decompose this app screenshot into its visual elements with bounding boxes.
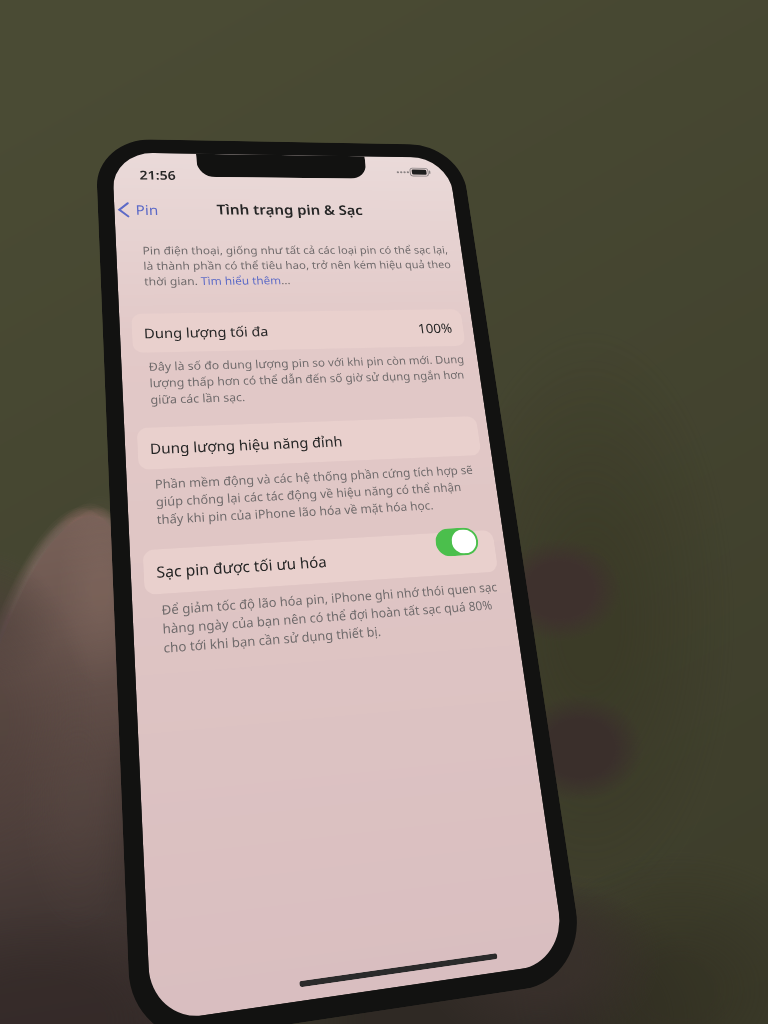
staticText: 21:56 bbox=[139, 166, 177, 183]
staticText: Để giảm tốc độ lão hóa pin, iPhone ghi n… bbox=[161, 578, 512, 657]
staticText: Đây là số đo dung lượng pin so với khi p… bbox=[148, 352, 478, 408]
staticText: Pin bbox=[135, 201, 159, 219]
button[interactable]: Dung lượng hiệu năng đỉnh bbox=[137, 416, 482, 470]
staticText: Sạc pin được tối ưu hóa bbox=[156, 551, 328, 582]
button[interactable]: Pin bbox=[114, 197, 163, 222]
button[interactable]: Sạc pin được tối ưu hóa bbox=[142, 530, 498, 595]
staticText: 100% bbox=[417, 319, 454, 337]
staticText: Tình trạng pin & Sạc bbox=[216, 200, 364, 218]
staticText: Phần mềm động và các hệ thống phần cứng … bbox=[154, 461, 494, 528]
staticText: Pin điện thoại, giống như tất cả các loạ… bbox=[142, 243, 461, 289]
button[interactable]: Optimized Battery Charging, on bbox=[434, 527, 480, 557]
button[interactable]: Dung lượng tối đa bbox=[131, 309, 466, 353]
staticText: Dung lượng tối đa bbox=[143, 322, 270, 342]
staticText: Dung lượng hiệu năng đỉnh bbox=[149, 432, 343, 458]
